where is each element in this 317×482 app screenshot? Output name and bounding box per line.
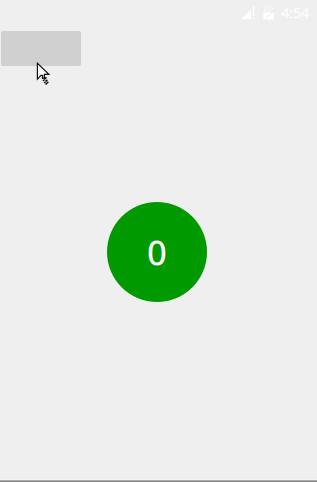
button[interactable]: Reset [1, 31, 81, 66]
staticText: 4:54 [281, 3, 309, 22]
button[interactable]: 0 [107, 202, 207, 302]
staticText: 0 [147, 229, 167, 275]
